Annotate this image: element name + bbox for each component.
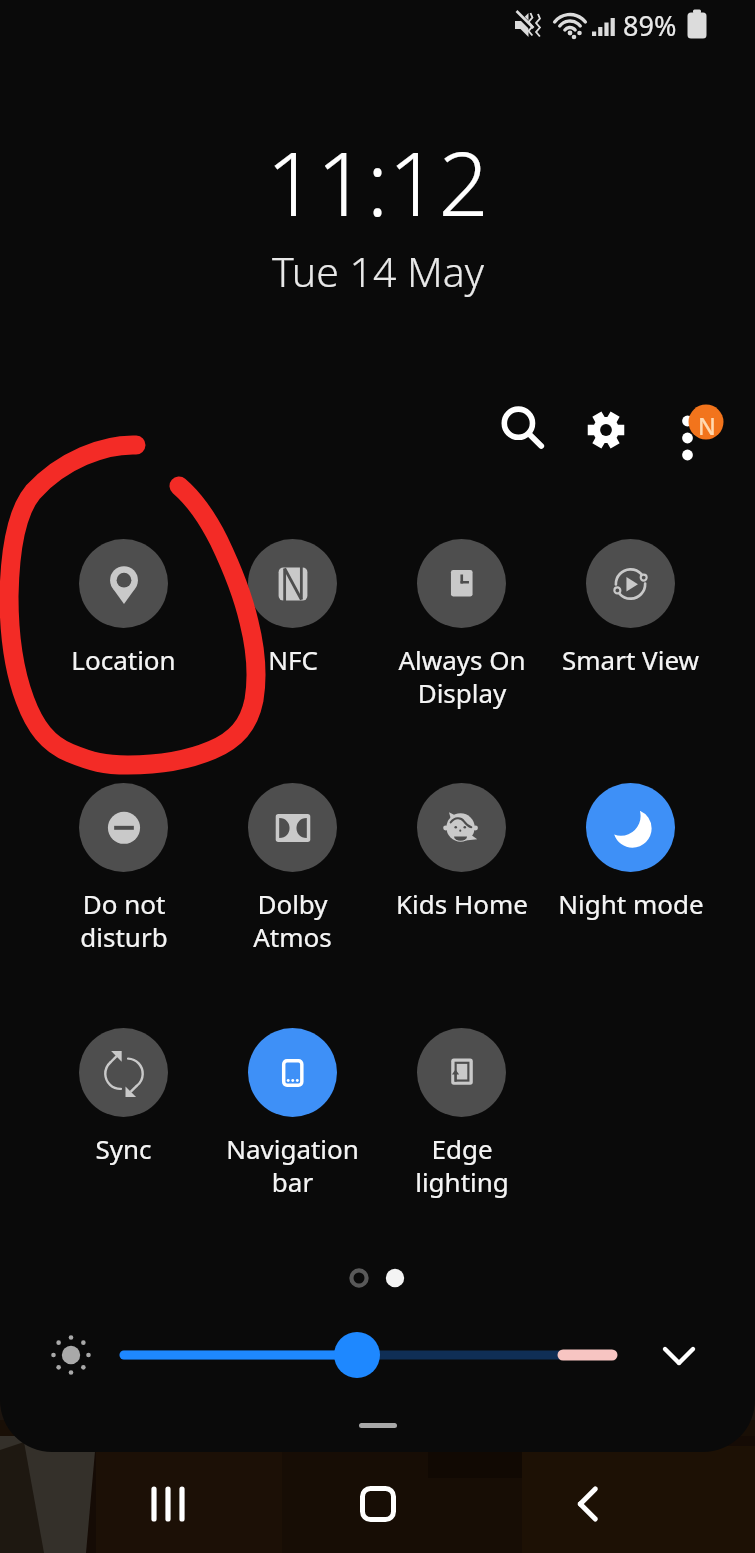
button[interactable]: Back (550, 1464, 630, 1544)
staticText: Location (71, 642, 176, 677)
button[interactable]: Sync (39, 1028, 208, 1166)
button[interactable]: Location (39, 539, 208, 677)
staticText: Tue 14 May (272, 243, 484, 299)
staticText: Always On Display (398, 642, 526, 711)
button[interactable]: Always On Display (377, 539, 546, 711)
staticText: Kids Home (396, 886, 528, 921)
button[interactable]: Do not disturb (39, 783, 208, 955)
button[interactable]: Navigation bar (208, 1028, 377, 1200)
staticText: Navigation bar (226, 1131, 359, 1200)
button[interactable]: Night mode (546, 783, 715, 921)
staticText: Smart View (562, 642, 699, 677)
button[interactable]: Recent apps (128, 1464, 208, 1544)
staticText: Edge lighting (415, 1131, 509, 1200)
button[interactable]: NFC (208, 539, 377, 677)
button[interactable]: Home (338, 1464, 418, 1544)
staticText: Do not disturb (80, 886, 168, 955)
staticText: Dolby Atmos (253, 886, 332, 955)
button[interactable]: Search (486, 390, 556, 460)
staticText: 11:12 (266, 122, 489, 242)
button[interactable]: Dolby Atmos (208, 783, 377, 955)
staticText: Night mode (558, 886, 704, 921)
staticText: NFC (268, 642, 318, 677)
staticText: N (698, 410, 716, 441)
button[interactable]: Smart View (546, 539, 715, 677)
staticText: 89% (623, 7, 677, 44)
button[interactable]: Settings (571, 395, 641, 465)
staticText: Sync (95, 1131, 152, 1166)
button[interactable]: More options (658, 390, 744, 470)
button[interactable]: Kids Home (377, 783, 546, 921)
button[interactable]: Edge lighting (377, 1028, 546, 1200)
